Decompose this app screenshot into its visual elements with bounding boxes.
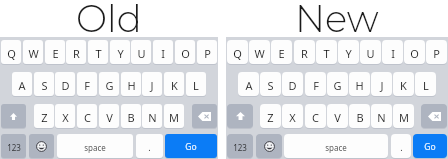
staticText: H — [355, 78, 364, 93]
button[interactable]: Y — [338, 40, 359, 64]
staticText: Go — [185, 141, 197, 153]
button[interactable]: C — [77, 104, 97, 128]
staticText: R — [73, 46, 80, 61]
button[interactable]: Backspace — [192, 104, 217, 128]
button[interactable]: M — [393, 104, 414, 128]
button[interactable]: Shift — [1, 104, 26, 128]
button[interactable]: W — [249, 40, 270, 64]
staticText: V — [106, 110, 113, 125]
button[interactable]: R — [294, 40, 315, 64]
staticText: 123 — [7, 142, 21, 153]
button[interactable]: space — [57, 134, 133, 158]
button[interactable]: O — [404, 40, 425, 64]
button[interactable]: E — [271, 40, 292, 64]
button[interactable]: A — [12, 72, 32, 96]
button[interactable]: 123 — [1, 134, 26, 158]
staticText: U — [137, 46, 146, 61]
staticText: M — [399, 110, 409, 125]
staticText: E — [52, 46, 59, 61]
button[interactable]: Q — [1, 40, 21, 64]
button[interactable]: Z — [260, 104, 281, 128]
button[interactable]: X — [282, 104, 303, 128]
button[interactable]: V — [99, 104, 119, 128]
button[interactable]: Go — [413, 134, 447, 158]
staticText: . — [400, 141, 403, 153]
button[interactable]: D — [282, 72, 303, 96]
button[interactable]: T — [316, 40, 337, 64]
button[interactable]: K — [164, 72, 184, 96]
button[interactable]: U — [360, 40, 381, 64]
button[interactable]: X — [55, 104, 75, 128]
button[interactable]: I — [382, 40, 403, 64]
button[interactable]: I — [153, 40, 173, 64]
button[interactable]: F — [77, 72, 97, 96]
button[interactable]: H — [349, 72, 370, 96]
button[interactable]: Backspace — [421, 104, 447, 128]
button[interactable]: J — [371, 72, 392, 96]
staticText: K — [171, 78, 178, 93]
staticText: O — [410, 46, 419, 61]
button[interactable]: . — [391, 134, 411, 158]
staticText: F — [313, 78, 319, 93]
staticText: P — [204, 46, 211, 61]
button[interactable]: E — [45, 40, 65, 64]
button[interactable]: Emoji — [256, 134, 282, 158]
staticText: O — [181, 46, 190, 61]
button[interactable]: L — [415, 72, 436, 96]
staticText: K — [400, 78, 407, 93]
staticText: Old — [76, 0, 142, 41]
button[interactable]: U — [131, 40, 151, 64]
staticText: D — [61, 78, 70, 93]
button[interactable]: C — [305, 104, 326, 128]
button[interactable]: B — [349, 104, 370, 128]
button[interactable]: M — [164, 104, 184, 128]
button[interactable]: O — [175, 40, 195, 64]
button[interactable]: S — [34, 72, 54, 96]
staticText: J — [380, 78, 384, 93]
staticText: D — [288, 78, 297, 93]
button[interactable]: L — [186, 72, 206, 96]
staticText: C — [84, 110, 91, 125]
button[interactable]: T — [88, 40, 108, 64]
staticText: T — [95, 46, 102, 61]
button[interactable]: . — [136, 134, 163, 158]
staticText: X — [62, 110, 69, 125]
button[interactable]: B — [121, 104, 141, 128]
button[interactable]: V — [327, 104, 348, 128]
staticText: New — [295, 0, 379, 41]
button[interactable]: S — [260, 72, 281, 96]
button[interactable]: P — [197, 40, 217, 64]
staticText: G — [105, 78, 114, 93]
button[interactable]: H — [121, 72, 141, 96]
button[interactable]: Q — [227, 40, 248, 64]
button[interactable]: N — [142, 104, 162, 128]
staticText: L — [423, 78, 429, 93]
button[interactable]: Shift — [227, 104, 253, 128]
staticText: Go — [424, 141, 436, 153]
button[interactable]: Go — [165, 134, 217, 158]
button[interactable]: J — [142, 72, 162, 96]
staticText: 123 — [233, 142, 247, 153]
staticText: W — [254, 46, 265, 61]
button[interactable]: W — [23, 40, 43, 64]
button[interactable]: Y — [110, 40, 130, 64]
button[interactable]: G — [99, 72, 119, 96]
button[interactable]: space — [284, 134, 388, 158]
staticText: Q — [7, 46, 16, 61]
button[interactable]: G — [327, 72, 348, 96]
button[interactable]: F — [305, 72, 326, 96]
button[interactable]: K — [393, 72, 414, 96]
button[interactable]: A — [238, 72, 259, 96]
staticText: B — [127, 110, 135, 125]
button[interactable]: R — [66, 40, 86, 64]
button[interactable]: Emoji — [29, 134, 54, 158]
staticText: Z — [41, 110, 48, 125]
staticText: F — [84, 78, 90, 93]
staticText: H — [127, 78, 136, 93]
button[interactable]: D — [55, 72, 75, 96]
button[interactable]: 123 — [227, 134, 253, 158]
button[interactable]: P — [426, 40, 447, 64]
staticText: A — [18, 78, 26, 93]
button[interactable]: N — [371, 104, 392, 128]
button[interactable]: Z — [34, 104, 54, 128]
